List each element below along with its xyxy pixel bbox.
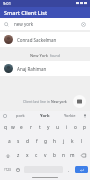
staticText: c — [35, 152, 38, 159]
button[interactable]: Yorkie — [57, 113, 82, 118]
button[interactable]: r — [26, 122, 35, 133]
button[interactable]: d — [23, 136, 32, 147]
staticText: e — [20, 124, 23, 131]
button[interactable]: Enter — [75, 166, 88, 173]
button[interactable]: Google — [2, 113, 8, 119]
button[interactable]: Backspace — [77, 150, 89, 161]
staticText: q — [4, 124, 7, 131]
button[interactable]: pork — [8, 113, 32, 118]
staticText: j — [63, 138, 65, 145]
staticText: b — [53, 152, 56, 159]
staticText: n — [62, 152, 65, 159]
button[interactable]: s — [14, 136, 23, 147]
staticText: s — [17, 138, 20, 145]
staticText: Yorkie — [64, 113, 76, 118]
staticText: new york — [14, 21, 81, 27]
button[interactable]: Clear — [81, 22, 86, 27]
button[interactable]: Search — [0, 18, 90, 30]
staticText: f — [36, 138, 38, 145]
staticText: p — [83, 124, 86, 131]
button[interactable]: w — [9, 122, 17, 133]
staticText: w — [11, 124, 15, 131]
staticText: t — [39, 124, 41, 131]
button[interactable]: . — [64, 164, 74, 175]
staticText: h — [53, 138, 56, 145]
staticText: r — [30, 124, 32, 131]
button[interactable]: o — [71, 122, 80, 133]
button[interactable]: f — [32, 136, 41, 147]
button[interactable]: ?123 — [1, 164, 13, 175]
staticText: pork — [16, 113, 25, 118]
staticText: found — [50, 53, 60, 58]
button[interactable]: c — [32, 150, 41, 161]
button[interactable]: m — [68, 150, 77, 161]
button[interactable]: n — [59, 150, 68, 161]
button[interactable]: k — [68, 136, 77, 147]
button[interactable]: t — [35, 122, 44, 133]
staticText: New york — [51, 99, 67, 104]
staticText: . — [68, 167, 70, 173]
button[interactable]: Emoji — [13, 164, 23, 175]
button[interactable]: y — [44, 122, 53, 133]
button[interactable]: h — [50, 136, 59, 147]
staticText: u — [56, 124, 59, 131]
staticText: York — [40, 113, 50, 119]
button[interactable]: Shift — [1, 150, 14, 161]
staticText: z — [17, 152, 20, 159]
button[interactable]: Anaj Rahiman — [0, 61, 90, 76]
staticText: g — [44, 138, 47, 145]
staticText: Conrad Sackelman — [17, 37, 57, 43]
staticText: l — [81, 138, 83, 145]
staticText: Client last line in — [23, 99, 51, 104]
button[interactable]: u — [53, 122, 62, 133]
button[interactable]: Add client — [73, 95, 86, 108]
staticText: New York — [30, 53, 50, 58]
button[interactable]: Voice input — [82, 113, 88, 119]
staticText: k — [71, 138, 74, 145]
button[interactable]: b — [50, 150, 59, 161]
button[interactable]: a — [4, 136, 14, 147]
staticText: 9:01 — [3, 1, 11, 6]
button[interactable]: l — [77, 136, 86, 147]
staticText: a — [8, 138, 11, 145]
staticText: v — [44, 152, 47, 159]
staticText: d — [26, 138, 29, 145]
button[interactable]: i — [62, 122, 71, 133]
button[interactable]: x — [23, 150, 32, 161]
other: Search — [4, 22, 9, 27]
staticText: Anaj Rahiman — [17, 66, 47, 72]
staticText: m — [70, 152, 75, 159]
button[interactable]: g — [41, 136, 50, 147]
button[interactable]: j — [59, 136, 68, 147]
staticText: x — [26, 152, 29, 159]
button[interactable]: Conrad Sackelman — [0, 32, 90, 47]
button[interactable]: q — [1, 122, 9, 133]
button[interactable]: z — [14, 150, 23, 161]
button[interactable]: p — [80, 122, 89, 133]
button[interactable]: e — [17, 122, 26, 133]
staticText: ?123 — [4, 168, 11, 172]
button[interactable]: York — [32, 113, 57, 119]
staticText: o — [74, 124, 77, 131]
staticText: Smart Client List — [4, 9, 48, 16]
staticText: y — [47, 124, 50, 131]
button[interactable]: v — [41, 150, 50, 161]
staticText: i — [66, 124, 68, 131]
